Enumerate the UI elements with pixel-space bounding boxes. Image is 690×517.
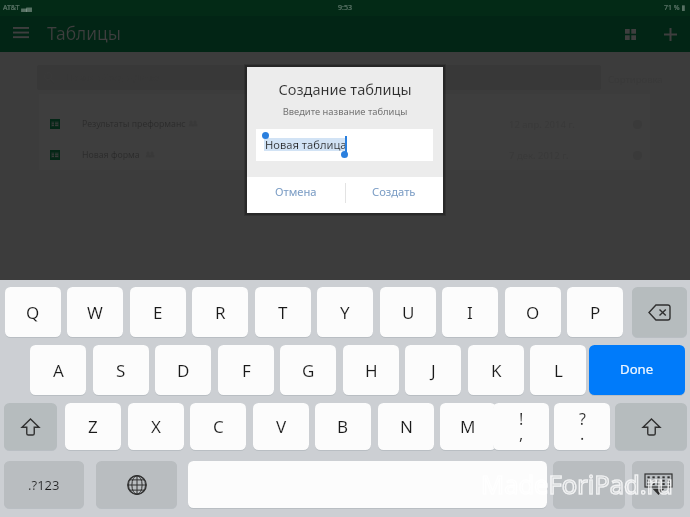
staticText: Результаты преформанс — [82, 118, 186, 130]
staticText: K — [491, 359, 502, 382]
button[interactable]: Hide keyboard — [632, 461, 684, 508]
staticText: AT&T ▃▄ — [3, 3, 32, 13]
button[interactable]: P — [567, 287, 623, 337]
staticText: V — [276, 415, 287, 438]
button[interactable]: New spreadsheet — [654, 16, 686, 52]
staticText: D — [177, 359, 190, 382]
button[interactable]: K — [468, 345, 524, 395]
staticText: G — [302, 359, 315, 382]
button[interactable]: Menu — [5, 16, 37, 48]
staticText: ? — [579, 408, 586, 430]
staticText: MadeForiPad.ru — [481, 467, 673, 502]
staticText: S — [116, 359, 126, 382]
staticText: Q — [26, 301, 40, 324]
button[interactable]: Backspace — [632, 287, 687, 337]
button[interactable]: C — [190, 403, 246, 450]
staticText: W — [87, 301, 103, 324]
button[interactable]: V — [253, 403, 309, 450]
button[interactable]: N — [378, 403, 434, 450]
button[interactable]: Q — [5, 287, 61, 337]
button[interactable]: B — [315, 403, 371, 450]
button[interactable]: E — [130, 287, 186, 337]
staticText: Создать — [372, 184, 416, 199]
staticText: , — [519, 423, 524, 445]
staticText: P — [590, 301, 601, 324]
staticText: Done — [620, 360, 654, 378]
button[interactable]: ! — [493, 403, 549, 450]
staticText: 9:53 — [338, 3, 352, 13]
button[interactable]: X — [128, 403, 184, 450]
button[interactable]: F — [218, 345, 274, 395]
staticText: J — [431, 359, 436, 382]
staticText: X — [151, 415, 161, 438]
button[interactable]: A — [30, 345, 86, 395]
button[interactable]: D — [155, 345, 211, 395]
staticText: R — [215, 301, 226, 324]
button[interactable]: Next keyboard — [96, 461, 177, 508]
staticText: Новая таблица — [265, 137, 347, 152]
staticText: F — [242, 359, 251, 382]
staticText: Отмена — [275, 184, 317, 199]
staticText: .?123 — [28, 476, 60, 494]
staticText: I — [467, 301, 473, 324]
staticText: E — [153, 301, 163, 324]
button[interactable]: Отмена — [247, 177, 345, 213]
staticText: Таблицы — [47, 21, 121, 45]
button[interactable]: Новая форма — [39, 140, 650, 171]
button[interactable]: L — [530, 345, 586, 395]
staticText: Y — [340, 301, 350, 324]
staticText: Создание таблицы — [247, 79, 443, 99]
staticText: M — [460, 415, 476, 438]
button[interactable]: Создать — [345, 177, 443, 213]
staticText: A — [53, 359, 64, 382]
staticText: U — [402, 301, 415, 324]
staticText: Новая форма — [82, 149, 140, 161]
button[interactable]: Поиск в Google Диске — [37, 65, 601, 90]
staticText: Z — [88, 415, 98, 438]
button[interactable]: J — [405, 345, 461, 395]
button[interactable]: Shift — [615, 403, 687, 450]
button[interactable]: Grid view — [614, 16, 646, 52]
staticText: ! — [519, 408, 524, 430]
button[interactable]: Y — [317, 287, 373, 337]
button[interactable]: I — [442, 287, 498, 337]
button[interactable]: O — [505, 287, 561, 337]
staticText: H — [365, 359, 378, 382]
button[interactable]: G — [280, 345, 336, 395]
button[interactable]: S — [93, 345, 149, 395]
button[interactable]: Результаты преформанс — [39, 109, 650, 140]
staticText: B — [337, 415, 349, 438]
staticText: N — [400, 415, 413, 438]
button[interactable]: Keyboard layout — [553, 461, 625, 508]
staticText: Введите название таблицы — [247, 105, 443, 118]
button[interactable]: M — [440, 403, 496, 450]
button[interactable]: Z — [65, 403, 121, 450]
button[interactable]: T — [255, 287, 311, 337]
button[interactable]: Shift — [4, 403, 57, 450]
staticText: C — [213, 415, 224, 438]
button[interactable]: Done — [589, 345, 685, 395]
staticText: O — [526, 301, 540, 324]
button[interactable]: H — [343, 345, 399, 395]
button[interactable]: W — [67, 287, 123, 337]
button[interactable]: ? — [554, 403, 610, 450]
button[interactable]: R — [192, 287, 248, 337]
staticText: . — [580, 423, 585, 445]
button[interactable]: .?123 — [4, 461, 84, 508]
staticText: 71 % ▮ — [664, 3, 686, 13]
staticText: T — [278, 301, 288, 324]
button[interactable]: U — [380, 287, 436, 337]
staticText: L — [554, 359, 563, 382]
